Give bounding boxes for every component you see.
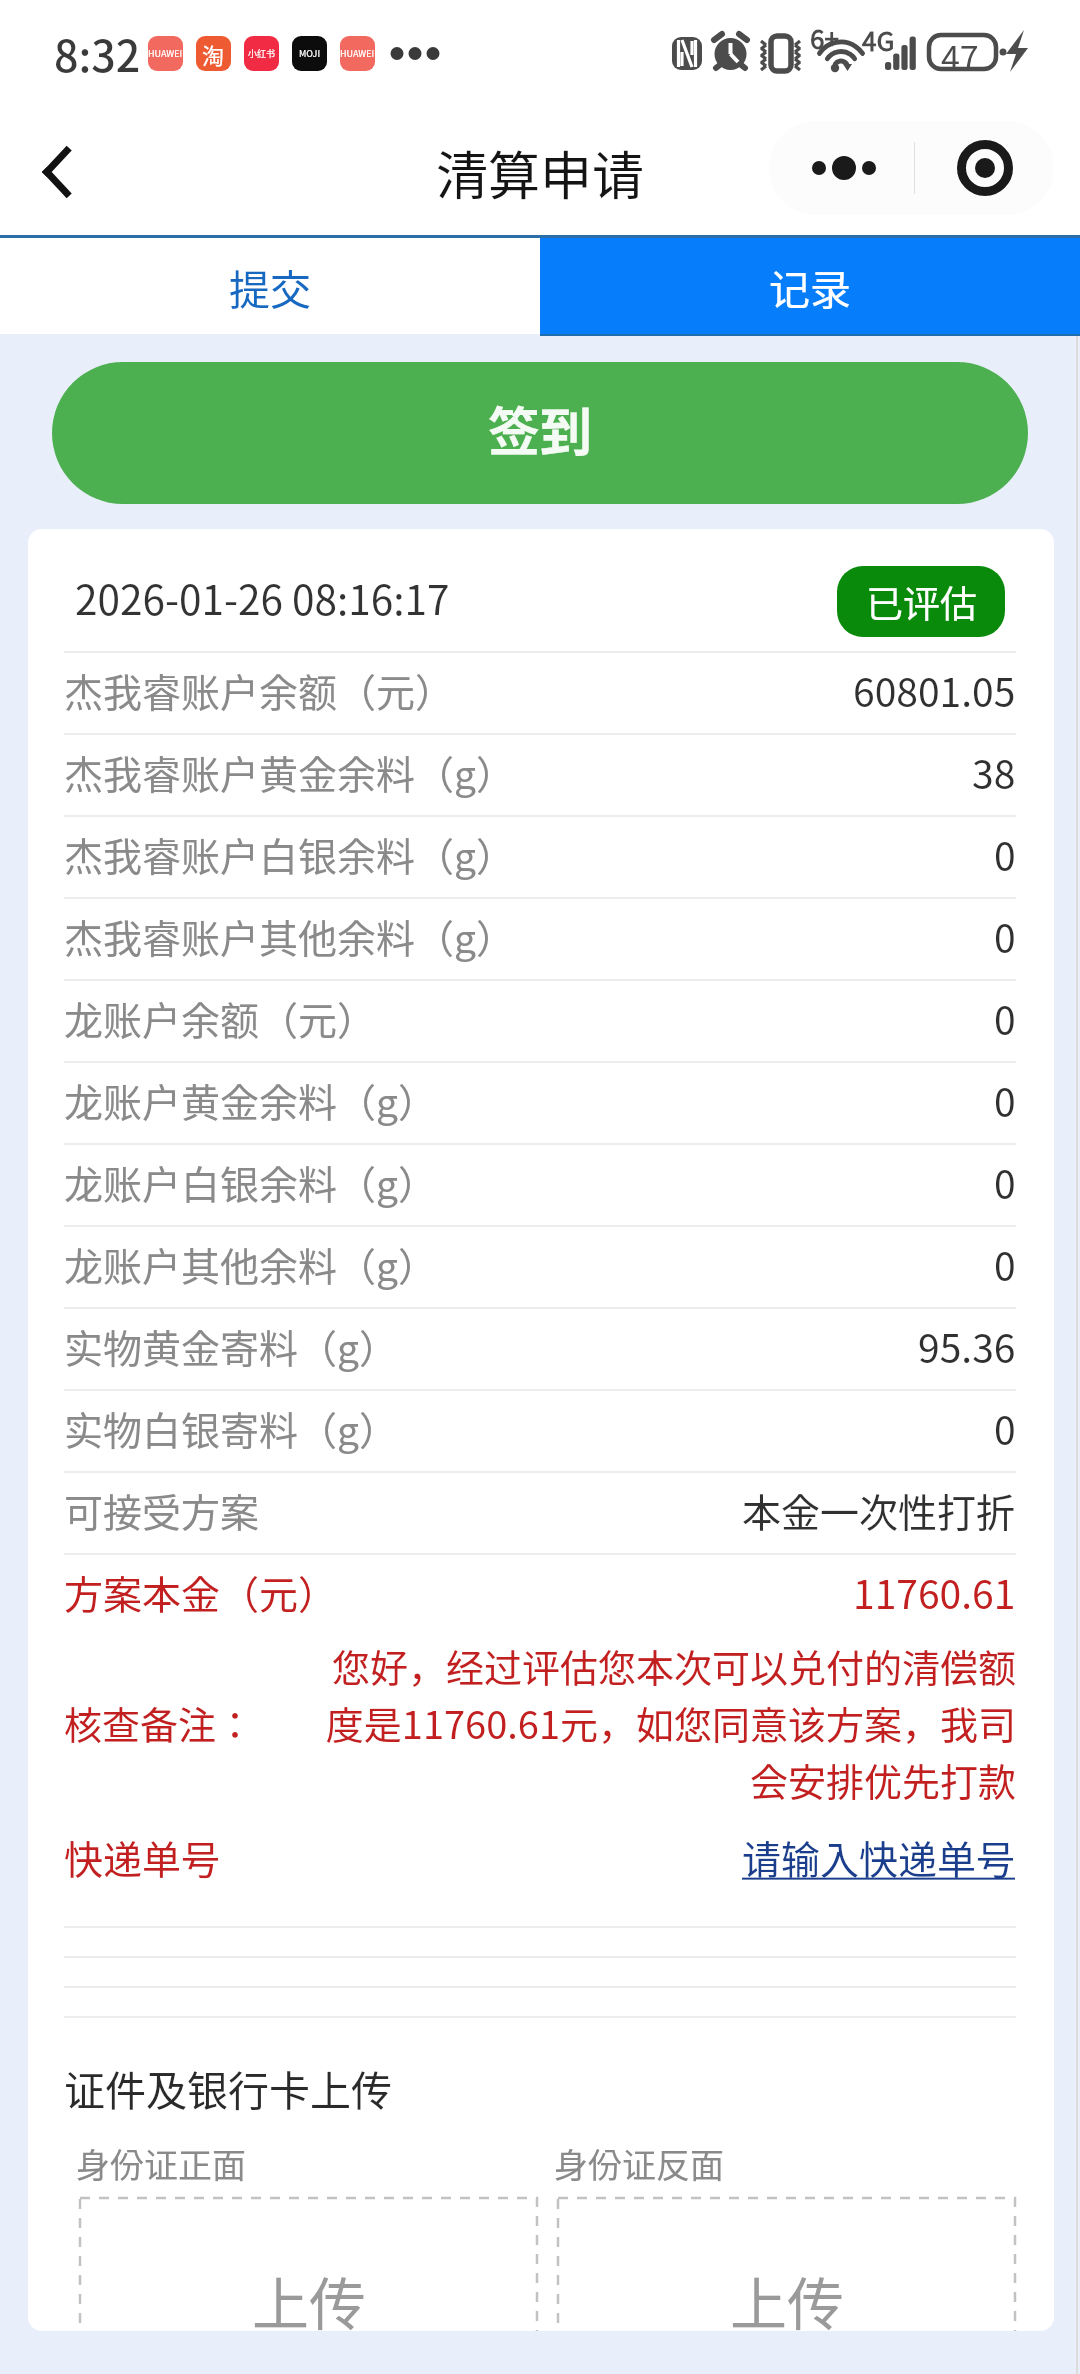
staticText: 0 [994, 1236, 1016, 1292]
staticText: 核查备注： [64, 1695, 255, 1750]
staticText: 身份证正面 [76, 2139, 246, 2188]
button[interactable]: 请输入快递单号 [742, 1829, 1016, 1885]
staticText: 您好，经过评估您本次可以兑付的清偿额度是11760.61元，如您同意该方案，我司… [313, 1638, 1016, 1807]
staticText: 杰我睿账户白银余料（g） [64, 826, 515, 882]
staticText: HUAWEI [340, 47, 375, 60]
staticText: 记录 [769, 257, 851, 316]
staticText: 提交 [229, 257, 311, 316]
staticText: 杰我睿账户黄金余料（g） [64, 744, 515, 800]
staticText: 实物黄金寄料（g） [64, 1318, 398, 1374]
staticText: HUAWEI [148, 47, 183, 60]
staticText: 0 [994, 1072, 1016, 1128]
staticText: 方案本金（元） [64, 1564, 338, 1620]
staticText: 龙账户其他余料（g） [64, 1236, 437, 1292]
staticText: 签到 [488, 391, 593, 466]
staticText: 身份证反面 [554, 2139, 724, 2188]
staticText: 实物白银寄料（g） [64, 1400, 398, 1456]
staticText: 0 [994, 1400, 1016, 1456]
other: Close [915, 121, 1054, 215]
button[interactable]: 已评估 [837, 566, 1005, 637]
staticText: 8:32 [54, 22, 141, 84]
staticText: 本金一次性打折 [742, 1482, 1016, 1538]
staticText: 龙账户黄金余料（g） [64, 1072, 437, 1128]
staticText: 上传 [252, 2259, 366, 2331]
staticText: 4G [862, 21, 895, 59]
button[interactable]: Back [18, 122, 98, 222]
button[interactable]: 上传 [558, 2198, 1015, 2331]
staticText: 上传 [730, 2259, 844, 2331]
staticText: 2026-01-26 08:16:17 [75, 568, 450, 627]
button[interactable]: 提交 [0, 238, 540, 334]
staticText: 可接受方案 [64, 1482, 260, 1538]
staticText: 95.36 [918, 1318, 1016, 1374]
button[interactable]: 上传 [80, 2198, 537, 2331]
staticText: 0 [994, 1154, 1016, 1210]
staticText: 淘 [202, 38, 225, 70]
button[interactable]: More [769, 121, 1054, 215]
staticText: 11760.61 [853, 1564, 1016, 1620]
staticText: 清算申请 [436, 135, 645, 210]
staticText: 杰我睿账户其他余料（g） [64, 908, 515, 964]
staticText: 38 [972, 744, 1016, 800]
staticText: 0 [994, 990, 1016, 1046]
staticText: 0 [994, 908, 1016, 964]
staticText: 47 [941, 32, 979, 81]
staticText: 0 [994, 826, 1016, 882]
staticText: 快递单号 [64, 1829, 221, 1885]
button[interactable]: 记录 [540, 238, 1080, 334]
staticText: 60801.05 [853, 662, 1016, 718]
staticText: 6+ [810, 19, 839, 57]
staticText: MOJI [299, 47, 321, 60]
other: More [769, 121, 914, 215]
staticText: 杰我睿账户余额（元） [64, 662, 455, 718]
staticText: 小红书 [248, 47, 276, 60]
staticText: 证件及银行卡上传 [64, 2058, 392, 2117]
button[interactable]: 签到 [52, 362, 1028, 504]
staticText: 龙账户白银余料（g） [64, 1154, 437, 1210]
staticText: 龙账户余额（元） [64, 990, 377, 1046]
staticText: 已评估 [866, 575, 977, 629]
